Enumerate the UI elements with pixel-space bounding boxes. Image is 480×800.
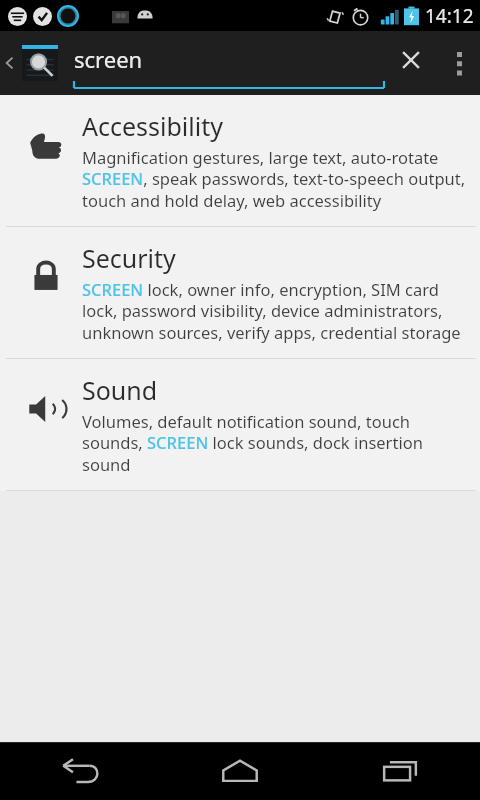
- staticText: Accessibility: [82, 109, 223, 143]
- staticText: Security: [82, 241, 176, 275]
- button[interactable]: More options: [438, 31, 480, 95]
- staticText: screen: [74, 44, 143, 74]
- staticText: Sound: [82, 373, 158, 407]
- button[interactable]: Clear query: [384, 31, 438, 95]
- button[interactable]: Home: [160, 742, 320, 800]
- button[interactable]: Sound: [0, 359, 480, 490]
- button[interactable]: Search: [20, 43, 60, 83]
- button[interactable]: Recent apps: [320, 742, 480, 800]
- button[interactable]: Back: [0, 31, 20, 95]
- button[interactable]: Security: [0, 227, 480, 358]
- button[interactable]: Accessibility: [0, 95, 480, 226]
- button[interactable]: Back: [0, 742, 160, 800]
- staticText: 14:12: [425, 3, 474, 29]
- staticText: Magnification gestures, large text, auto…: [82, 146, 466, 212]
- staticText: Volumes, default notification sound, tou…: [82, 410, 466, 476]
- staticText: SCREEN lock, owner info, encryption, SIM…: [82, 278, 466, 344]
